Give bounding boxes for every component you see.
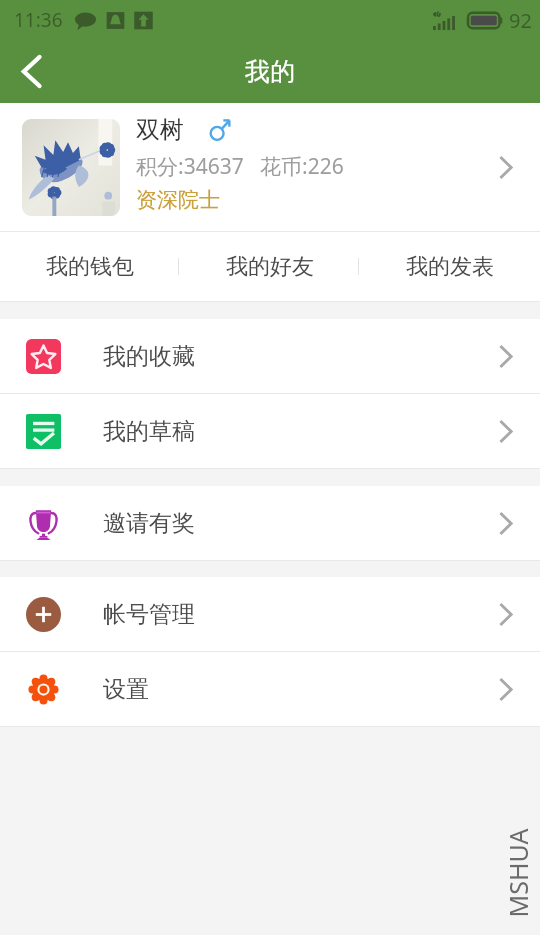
staticText: 我的钱包 — [46, 253, 134, 281]
button[interactable]: 双树 — [0, 103, 540, 231]
button[interactable]: 我的收藏 — [0, 319, 540, 393]
staticText: 积分:34637 花币:226 — [136, 152, 344, 181]
staticText: 我的发表 — [406, 253, 494, 281]
staticText: 设置 — [103, 675, 149, 704]
staticText: 资深院士 — [136, 187, 220, 213]
staticText: 我的 — [245, 56, 295, 87]
button[interactable]: 我的草稿 — [0, 394, 540, 468]
staticText: 11:36 — [14, 7, 63, 33]
button[interactable]: 我的发表 — [360, 232, 540, 301]
staticText: 我的收藏 — [103, 342, 195, 371]
button[interactable]: 帐号管理 — [0, 577, 540, 651]
staticText: 双树 — [136, 115, 184, 145]
staticText: 我的草稿 — [103, 417, 195, 446]
staticText: MSHUA — [501, 793, 535, 935]
staticText: 92 — [509, 7, 532, 34]
button[interactable]: 邀请有奖 — [0, 486, 540, 560]
button[interactable]: Back — [0, 40, 62, 103]
button[interactable]: 我的钱包 — [0, 232, 180, 301]
staticText: 帐号管理 — [103, 600, 195, 629]
button[interactable]: 我的好友 — [180, 232, 360, 301]
button[interactable]: 设置 — [0, 652, 540, 726]
staticText: 我的好友 — [226, 253, 314, 281]
staticText: 邀请有奖 — [103, 509, 195, 538]
